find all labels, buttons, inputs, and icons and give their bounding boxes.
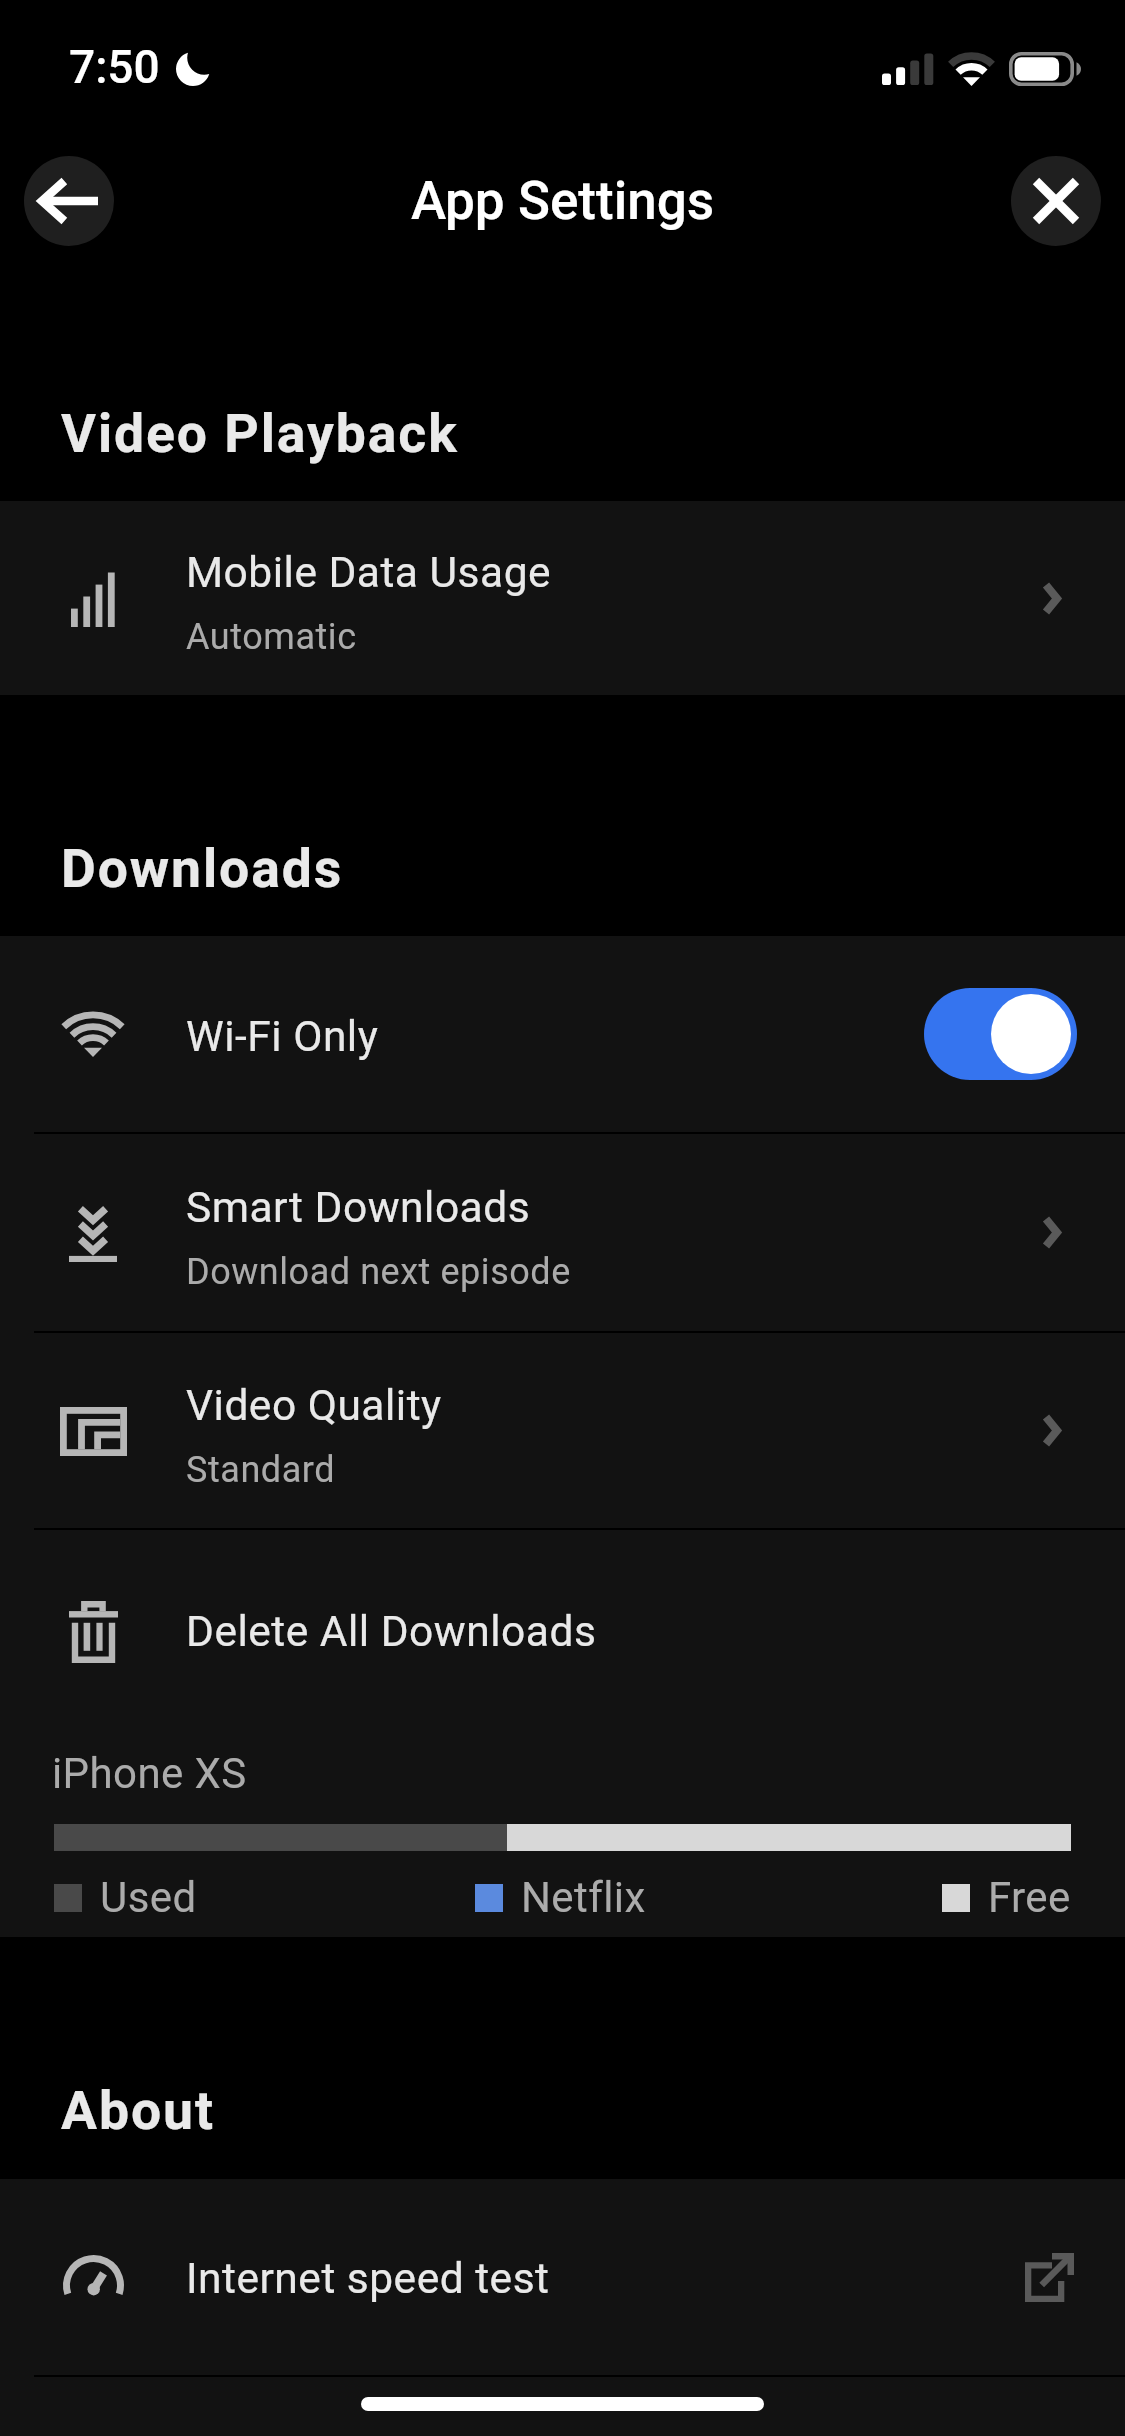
staticText: Used [100,1873,197,1922]
button[interactable]: Wi-Fi Only [924,988,1077,1080]
staticText: Downloads [61,837,344,900]
staticText: Mobile Data Usage [186,548,552,598]
button[interactable]: Internet speed test [0,2179,1125,2375]
staticText: Delete All Downloads [186,1607,597,1657]
staticText: Automatic [186,616,357,658]
staticText: 7:50 [69,40,160,94]
button[interactable]: Video Quality [0,1333,1125,1528]
button[interactable]: Smart Downloads [0,1134,1125,1331]
staticText: Download next episode [186,1251,571,1293]
button[interactable]: Mobile Data Usage [0,501,1125,695]
button[interactable]: Close [1011,156,1101,246]
button[interactable]: Wi-Fi Only [0,936,1125,1132]
staticText: iPhone XS [52,1749,247,1798]
staticText: App Settings [411,170,715,232]
staticText: Video Playback [61,402,459,465]
button[interactable]: Delete All Downloads [0,1530,1125,1734]
staticText: About [61,2079,215,2142]
staticText: Internet speed test [186,2254,550,2304]
staticText: Wi-Fi Only [186,1012,379,1062]
staticText: Smart Downloads [186,1183,531,1233]
staticText: Netflix [521,1873,646,1922]
button[interactable]: Back [24,156,114,246]
staticText: Standard [186,1449,336,1491]
staticText: Video Quality [186,1381,442,1431]
staticText: Free [988,1873,1071,1922]
